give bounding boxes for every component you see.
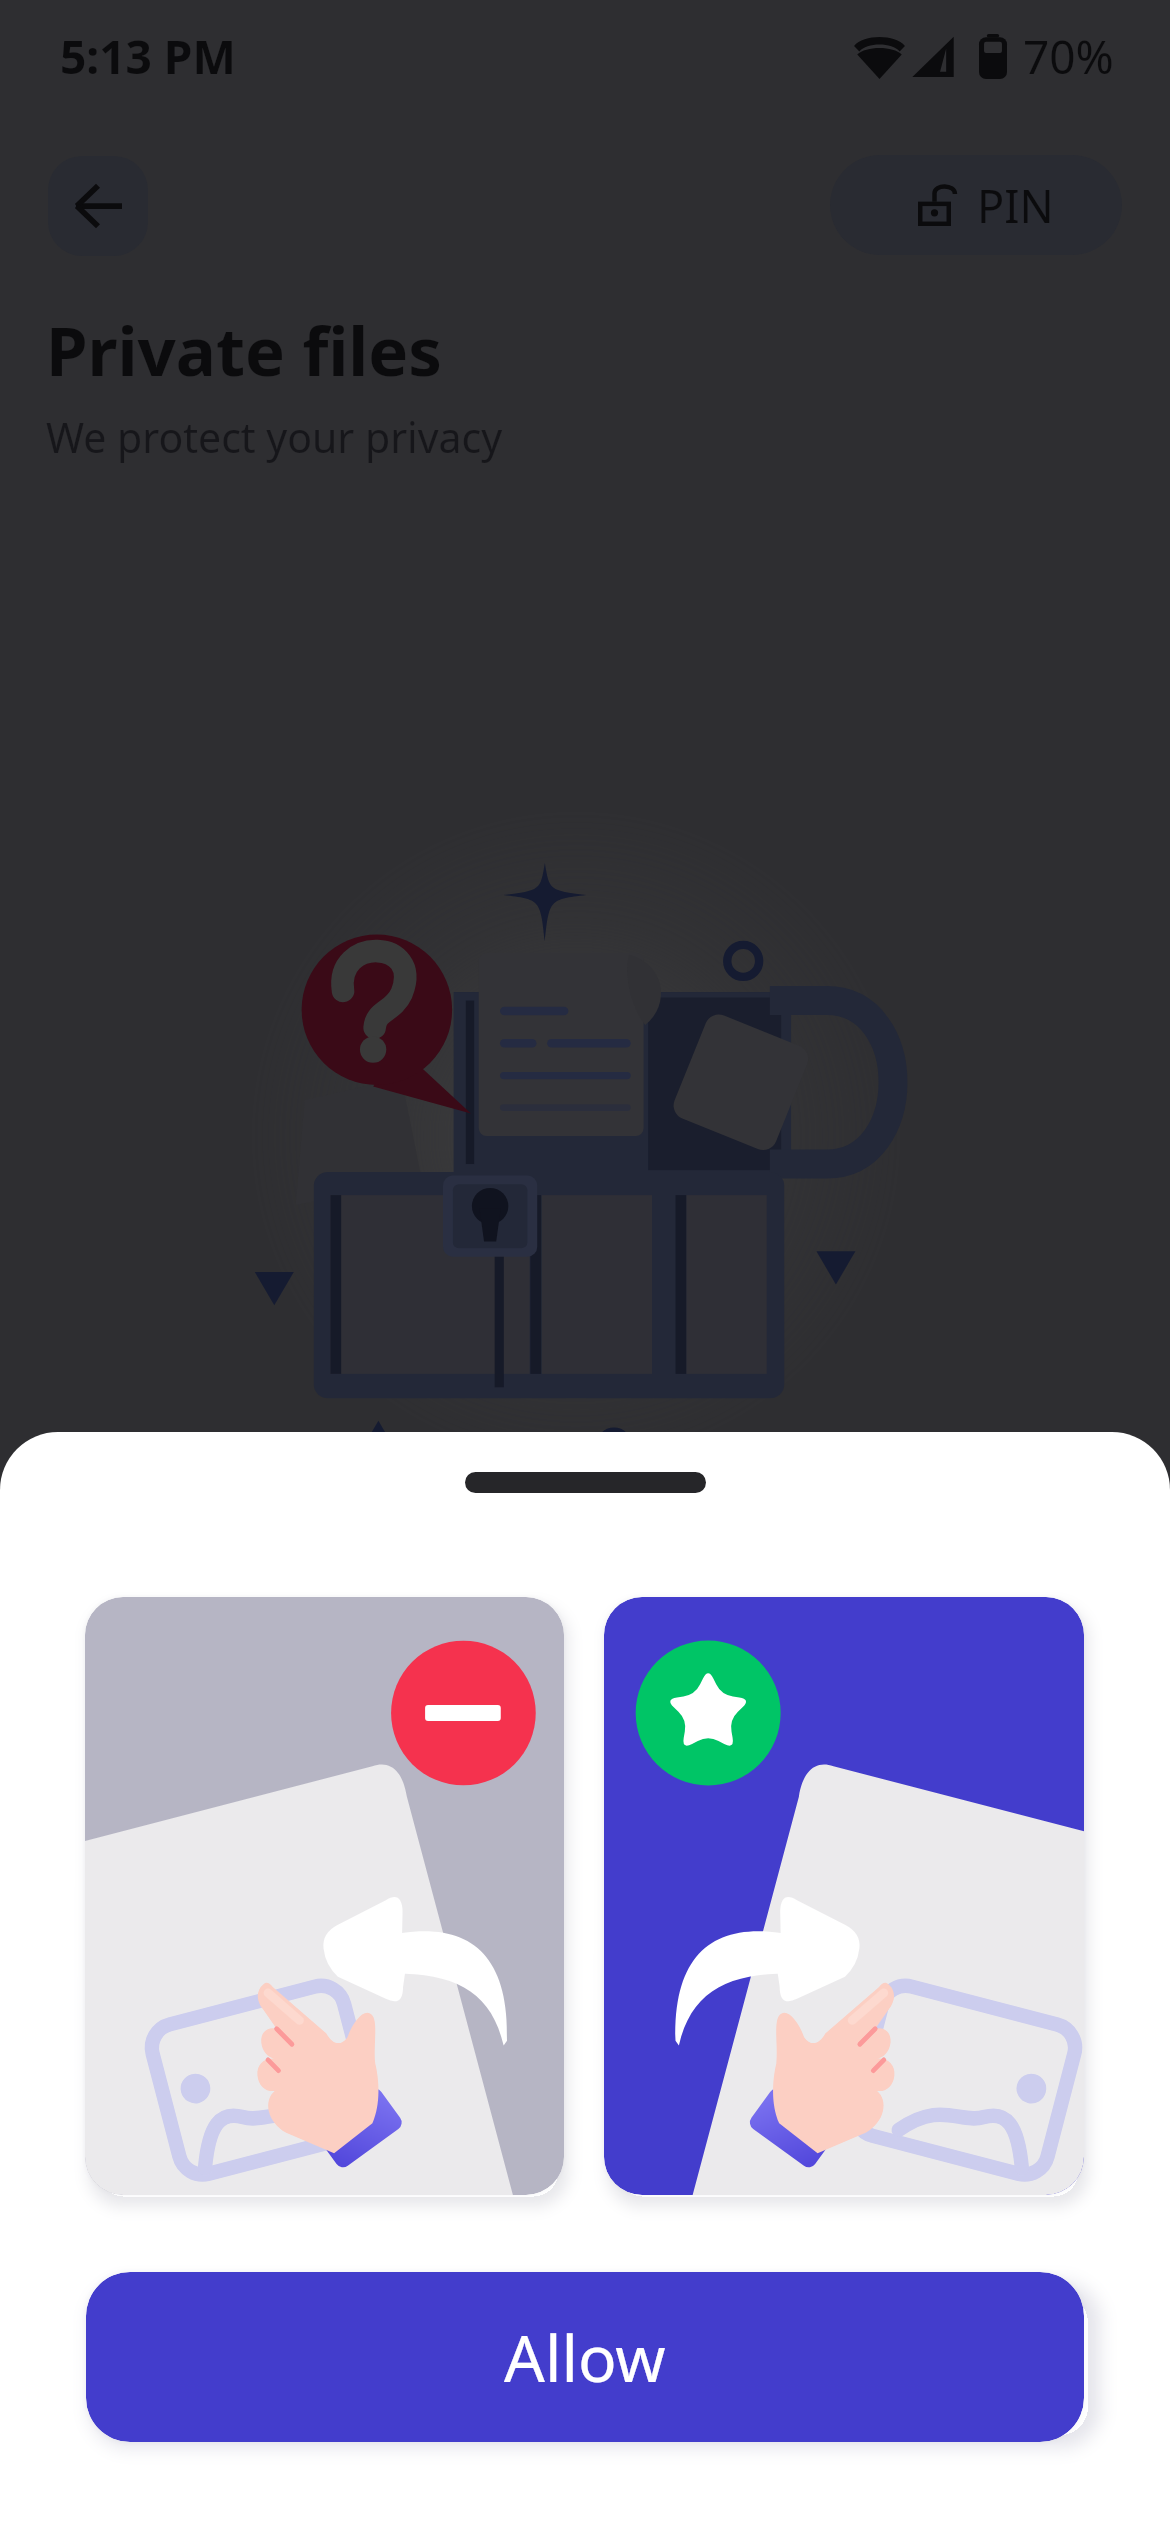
- staticText: We protect your privacy: [46, 409, 503, 465]
- button[interactable]: Back: [48, 156, 148, 256]
- button[interactable]: Drag handle: [465, 1472, 706, 1493]
- button[interactable]: Swipe left to deny: [85, 1597, 564, 2195]
- button[interactable]: Swipe right to allow: [604, 1597, 1084, 2195]
- staticText: Private files: [46, 304, 442, 395]
- button[interactable]: PIN: [830, 155, 1122, 255]
- staticText: 5:13 PM: [60, 25, 236, 88]
- button[interactable]: Allow: [86, 2272, 1084, 2442]
- staticText: 70%: [1023, 25, 1114, 88]
- staticText: PIN: [977, 175, 1054, 236]
- staticText: Allow: [504, 2314, 666, 2401]
